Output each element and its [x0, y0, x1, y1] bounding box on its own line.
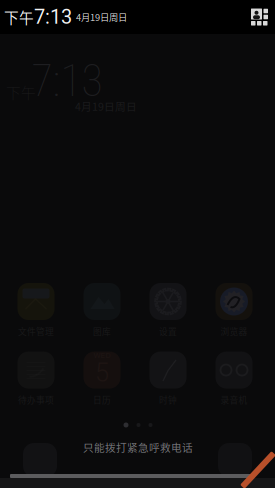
staticText: 文件管理: [18, 325, 54, 337]
staticText: 7:13: [31, 55, 102, 107]
staticText: WED: [93, 350, 110, 360]
button[interactable]: 待办事项: [6, 351, 66, 406]
staticText: 只能拨打紧急呼救电话: [83, 439, 193, 455]
staticText: 下午: [4, 6, 34, 28]
button[interactable]: 时钟: [138, 351, 198, 406]
staticText: 录音机: [220, 393, 247, 406]
button[interactable]: 录音机: [204, 351, 264, 406]
button[interactable]: 图库: [72, 283, 132, 337]
staticText: 4月19日周日: [72, 10, 127, 24]
button[interactable]: 只能拨打紧急呼救电话: [83, 439, 193, 455]
staticText: 日历: [93, 393, 111, 406]
staticText: 浏览器: [220, 325, 247, 337]
staticText: 时钟: [159, 393, 177, 406]
button[interactable]: Phone: [23, 443, 57, 477]
button[interactable]: WED: [72, 351, 132, 406]
button[interactable]: Camera: [218, 443, 252, 477]
button[interactable]: 浏览器: [204, 283, 264, 337]
staticText: 4月19日周日: [75, 98, 137, 114]
staticText: 7:13: [34, 5, 72, 29]
button[interactable]: 文件管理: [6, 283, 66, 337]
staticText: 待办事项: [18, 393, 54, 406]
button[interactable]: 设置: [138, 283, 198, 337]
button[interactable]: Multi window: [248, 5, 271, 28]
staticText: 设置: [159, 325, 177, 337]
staticText: 图库: [93, 325, 111, 337]
